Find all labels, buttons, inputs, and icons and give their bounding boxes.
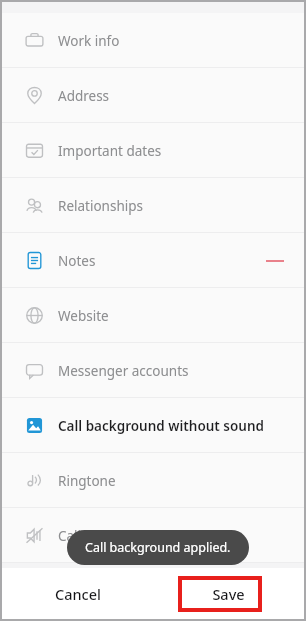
staticText: Website	[58, 307, 109, 325]
button[interactable]: Remove Notes	[262, 248, 288, 274]
button[interactable]: Call background	[2, 508, 304, 563]
button[interactable]: Cancel	[2, 568, 153, 619]
button[interactable]: Address	[2, 68, 304, 123]
button[interactable]: Relationships	[2, 178, 304, 233]
staticText: Messenger accounts	[58, 362, 189, 380]
button[interactable]: Ringtone	[2, 453, 304, 508]
staticText: Notes	[58, 252, 96, 270]
button[interactable]: Work info	[2, 13, 304, 68]
staticText: Relationships	[58, 197, 143, 215]
button[interactable]: Important dates	[2, 123, 304, 178]
button[interactable]: Notes	[2, 233, 304, 288]
staticText: Work info	[58, 32, 120, 50]
button[interactable]: Messenger accounts	[2, 343, 304, 398]
staticText: Cancel	[55, 584, 101, 604]
button[interactable]: Save	[153, 568, 304, 619]
button[interactable]: Call background without sound	[2, 398, 304, 453]
button[interactable]: Website	[2, 288, 304, 343]
staticText: Important dates	[58, 142, 162, 160]
staticText: Call background	[58, 527, 161, 545]
staticText: Call background applied.	[85, 539, 231, 556]
staticText: Ringtone	[58, 472, 116, 490]
staticText: Save	[212, 584, 245, 604]
staticText: Address	[58, 87, 110, 105]
staticText: Call background without sound	[58, 417, 264, 435]
